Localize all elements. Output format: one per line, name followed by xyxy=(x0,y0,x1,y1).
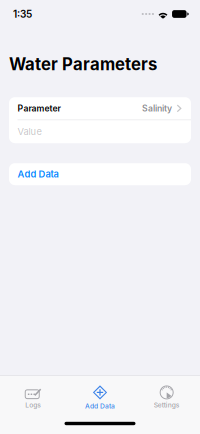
staticText: Parameter xyxy=(17,103,60,114)
button[interactable]: Logs xyxy=(0,377,67,412)
staticText: 1:35 xyxy=(13,8,32,20)
staticText: Add Data xyxy=(17,168,58,180)
staticText: Logs xyxy=(25,401,41,409)
button[interactable]: Add Data xyxy=(0,163,200,185)
button[interactable]: Parameter xyxy=(9,97,191,120)
staticText: Salinity xyxy=(142,103,172,114)
staticText: Value xyxy=(17,126,41,137)
staticText: Water Parameters xyxy=(9,54,157,74)
staticText: Settings xyxy=(154,401,180,409)
staticText: Add Data xyxy=(85,402,115,410)
button[interactable]: Add Data xyxy=(67,376,133,413)
button[interactable]: Settings xyxy=(133,377,200,412)
